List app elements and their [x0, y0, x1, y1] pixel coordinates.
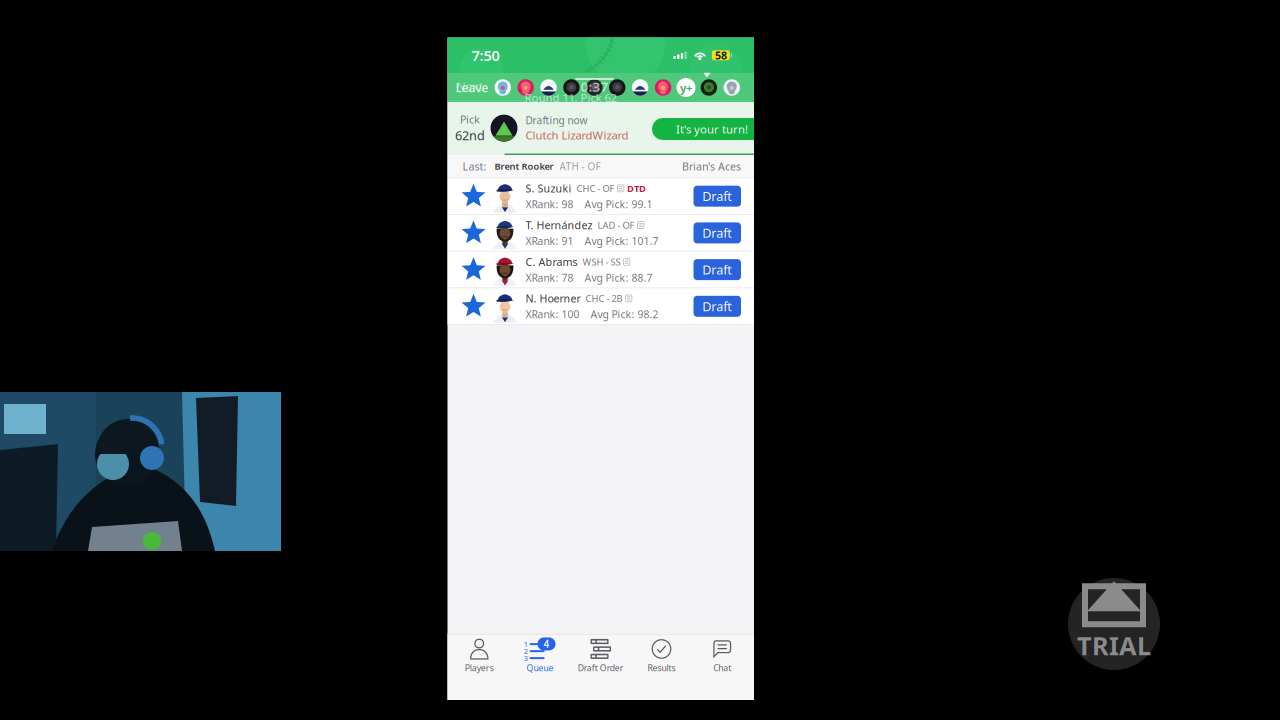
staticText: T. Hernández	[525, 218, 592, 232]
staticText: Clutch LizardWizard	[525, 127, 628, 143]
staticText: ATH - OF	[559, 159, 600, 173]
staticText: Brent Rooker	[494, 160, 553, 173]
button[interactable]: Draft	[693, 259, 741, 280]
staticText: 0:37	[580, 77, 608, 96]
staticText: S. Suzuki	[525, 181, 571, 196]
staticText: Results	[647, 662, 675, 674]
staticText: 62nd	[455, 127, 485, 144]
staticText: C. Abrams	[525, 254, 577, 269]
button[interactable]: Chat	[693, 635, 751, 677]
staticText: WSH - SS	[582, 255, 620, 268]
staticText: Avg Pick: 88.7	[584, 270, 652, 285]
staticText: TRIAL	[1077, 628, 1151, 663]
staticText: XRank: 98	[525, 197, 573, 211]
staticText: CHC - 2B	[585, 292, 622, 305]
button[interactable]: Queue C. Abrams	[447, 252, 499, 288]
staticText: 3	[524, 653, 528, 663]
staticText: CHC - OF	[576, 182, 614, 195]
button[interactable]: Draft	[693, 222, 741, 243]
staticText: Last:	[462, 159, 486, 173]
staticText: Pick	[460, 112, 480, 127]
staticText: Draft Order	[578, 662, 624, 674]
staticText: Drafting now	[525, 113, 587, 127]
staticText: 1	[524, 639, 528, 649]
staticText: Brian's Aces	[682, 159, 741, 173]
staticText: Round 11, Pick 62	[524, 90, 616, 105]
staticText: Leave	[455, 79, 488, 96]
staticText: 4	[543, 637, 549, 651]
staticText: 7:50	[471, 45, 499, 65]
button[interactable]: Draft	[693, 296, 741, 317]
staticText: Draft	[702, 261, 732, 278]
staticText: Draft	[702, 188, 732, 205]
staticText: DTD	[627, 182, 646, 195]
button[interactable]: 1	[511, 635, 569, 677]
staticText: Next	[456, 78, 482, 95]
staticText: y+	[680, 80, 692, 95]
staticText: Draft	[702, 224, 732, 242]
staticText: XRank: 91	[525, 234, 573, 248]
button[interactable]: Queue N. Hoerner	[447, 288, 499, 324]
staticText: Avg Pick: 98.2	[590, 307, 658, 321]
staticText: N. Hoerner	[525, 291, 580, 306]
staticText: Players	[465, 662, 494, 674]
staticText: XRank: 78	[525, 270, 573, 285]
button[interactable]: Queue S. Suzuki	[447, 178, 499, 214]
staticText: It's your turn!	[676, 121, 748, 137]
button[interactable]: Draft	[693, 186, 741, 207]
staticText: Avg Pick: 99.1	[584, 197, 652, 211]
staticText: 2	[524, 646, 528, 656]
staticText: XRank: 100	[525, 307, 579, 321]
staticText: Avg Pick: 101.7	[584, 234, 658, 248]
button[interactable]: Leave	[439, 73, 494, 102]
button[interactable]: Draft Order	[572, 635, 630, 677]
button[interactable]: Players	[450, 635, 508, 677]
staticText: LAD - OF	[597, 219, 634, 231]
button[interactable]: Queue T. Hernández	[447, 215, 499, 251]
button[interactable]: Results	[632, 635, 690, 677]
staticText: 58	[715, 48, 727, 62]
staticText: Queue	[526, 662, 553, 674]
staticText: Chat	[713, 662, 731, 674]
staticText: Draft	[702, 298, 732, 315]
